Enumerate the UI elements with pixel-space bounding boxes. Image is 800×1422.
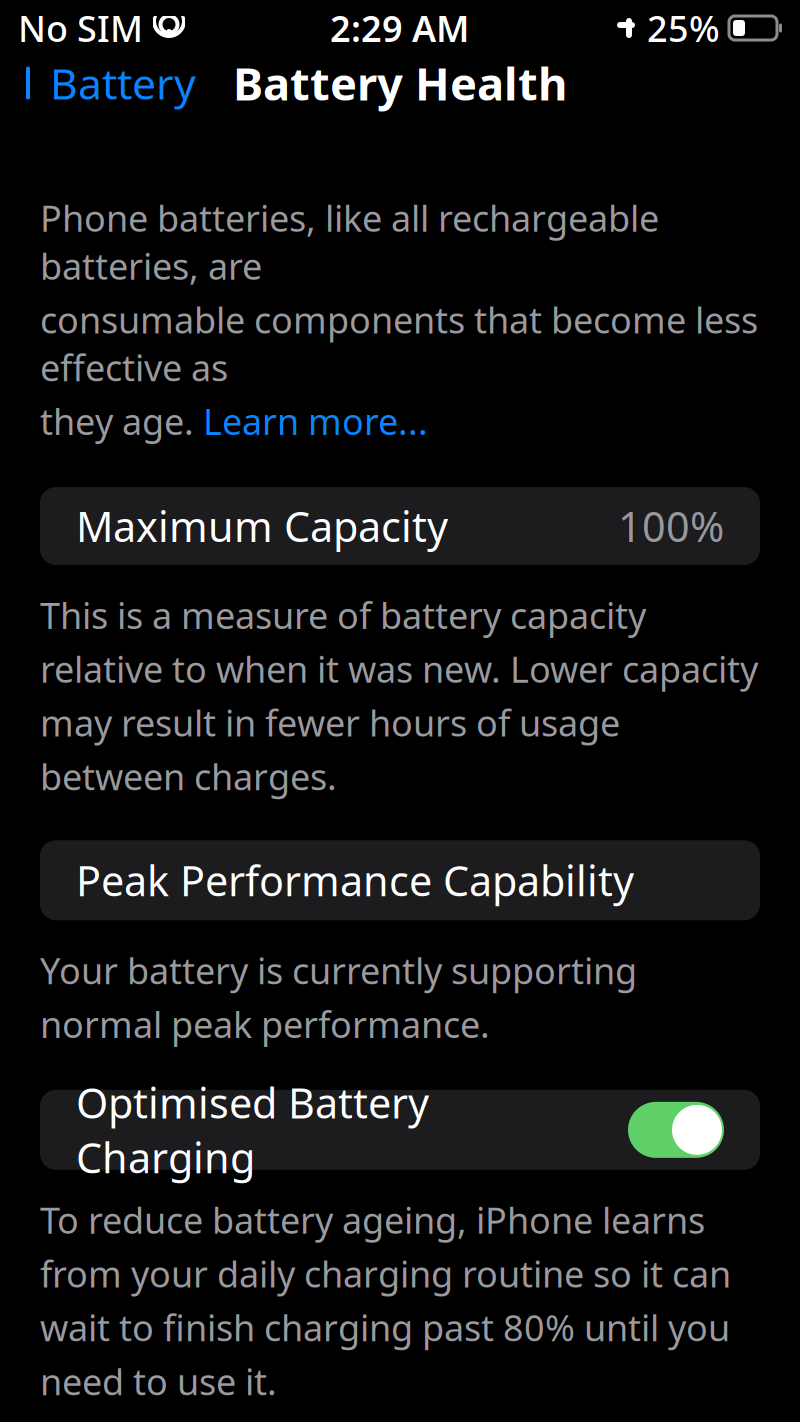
staticText: Optimised Battery Charging — [76, 1075, 429, 1185]
staticText: This is a measure of battery capacity re… — [40, 591, 758, 800]
staticText: 100% — [618, 499, 724, 553]
staticText: Battery — [50, 55, 196, 111]
staticText: 2:29 AM — [330, 4, 469, 52]
button[interactable]: Peak Performance Capability — [40, 840, 760, 920]
staticText: 25% — [647, 4, 720, 52]
staticText: Phone batteries, like all rechargeable b… — [40, 194, 659, 290]
staticText: Your battery is currently supporting nor… — [40, 946, 637, 1048]
staticText: Learn more... — [203, 397, 428, 445]
staticText: Maximum Capacity — [76, 499, 448, 553]
staticText: consumable components that become less e… — [40, 296, 758, 391]
staticText: No SIM — [18, 4, 143, 52]
staticText: Peak Performance Capability — [76, 853, 634, 908]
button[interactable]: Battery — [0, 45, 216, 121]
staticText: they age. — [40, 397, 203, 445]
button[interactable]: Maximum Capacity — [40, 487, 760, 565]
staticText: To reduce battery ageing, iPhone learns … — [40, 1196, 731, 1405]
button[interactable]: Optimised Battery Charging — [628, 1102, 724, 1158]
staticText: Battery Health — [233, 53, 567, 113]
button[interactable]: Learn more... — [203, 397, 428, 445]
